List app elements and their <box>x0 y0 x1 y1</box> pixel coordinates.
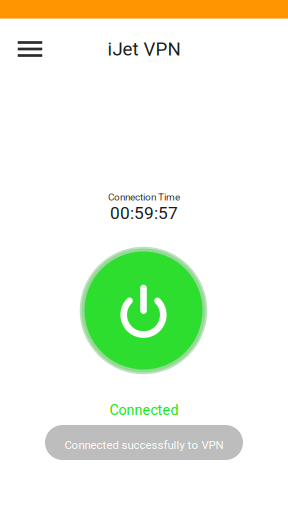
staticText: Connected successfully to VPN <box>64 438 223 452</box>
staticText: Connection Time <box>108 191 180 203</box>
staticText: 00:59:57 <box>110 203 178 223</box>
button[interactable]: Disconnect <box>80 247 207 374</box>
staticText: iJet VPN <box>107 38 180 60</box>
button[interactable]: Menu <box>8 27 52 71</box>
staticText: Connected <box>109 402 178 418</box>
